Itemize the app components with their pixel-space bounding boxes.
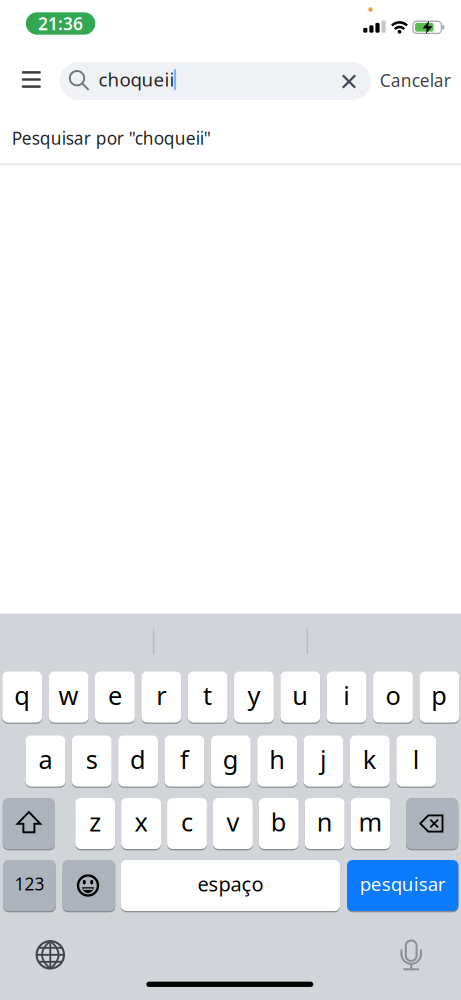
staticText: n: [317, 805, 333, 838]
staticText: u: [292, 678, 308, 712]
staticText: m: [359, 805, 383, 838]
staticText: p: [431, 678, 447, 712]
button[interactable]: Delete: [406, 797, 458, 850]
button[interactable]: Return to call: [26, 12, 95, 35]
staticText: a: [38, 742, 52, 776]
staticText: x: [135, 805, 148, 838]
button[interactable]: x: [121, 797, 161, 850]
button[interactable]: q: [2, 670, 42, 723]
button[interactable]: s: [72, 734, 112, 787]
staticText: o: [385, 678, 400, 712]
staticText: y: [247, 678, 260, 712]
button[interactable]: y: [234, 670, 274, 723]
button[interactable]: Cancelar: [360, 65, 461, 95]
staticText: g: [223, 742, 239, 776]
button[interactable]: pesquisar: [347, 859, 458, 912]
staticText: Cancelar: [380, 69, 451, 92]
staticText: f: [180, 742, 189, 776]
button[interactable]: Next keyboard: [28, 933, 72, 977]
staticText: v: [226, 805, 239, 838]
button[interactable]: l: [396, 734, 436, 787]
button[interactable]: Shift: [3, 797, 55, 850]
staticText: w: [58, 678, 78, 712]
button[interactable]: f: [165, 734, 204, 787]
button[interactable]: p: [419, 670, 459, 723]
staticText: j: [320, 742, 327, 776]
button[interactable]: w: [49, 670, 88, 723]
button[interactable]: a: [25, 734, 65, 787]
staticText: z: [89, 805, 101, 838]
staticText: 123: [14, 872, 44, 895]
button[interactable]: Menu: [15, 63, 47, 95]
button[interactable]: d: [118, 734, 158, 787]
staticText: k: [363, 742, 377, 776]
staticText: i: [343, 678, 350, 712]
staticText: l: [413, 742, 420, 776]
button[interactable]: o: [373, 670, 413, 723]
staticText: e: [108, 678, 122, 712]
staticText: h: [269, 742, 285, 776]
button[interactable]: v: [213, 797, 253, 850]
staticText: 21:36: [38, 12, 83, 35]
button[interactable]: espaço: [121, 859, 340, 912]
button[interactable]: h: [257, 734, 297, 787]
button[interactable]: b: [259, 797, 299, 850]
button[interactable]: i: [327, 670, 367, 723]
staticText: t: [203, 678, 212, 712]
button[interactable]: m: [351, 797, 390, 850]
staticText: espaço: [197, 870, 263, 897]
staticText: b: [271, 805, 287, 838]
button[interactable]: u: [280, 670, 320, 723]
button[interactable]: k: [350, 734, 390, 787]
button[interactable]: Emoji: [63, 859, 115, 912]
staticText: pesquisar: [360, 871, 446, 896]
button[interactable]: z: [75, 797, 115, 850]
staticText: q: [14, 678, 30, 712]
staticText: Pesquisar por "choqueii": [12, 126, 211, 149]
button[interactable]: r: [141, 670, 181, 723]
button[interactable]: 123: [3, 859, 56, 912]
button[interactable]: Clear text: [327, 59, 371, 103]
staticText: choqueii: [98, 67, 174, 92]
button[interactable]: c: [167, 797, 207, 850]
button[interactable]: n: [305, 797, 345, 850]
staticText: r: [156, 678, 166, 712]
button[interactable]: g: [211, 734, 251, 787]
staticText: d: [130, 742, 146, 776]
button[interactable]: j: [304, 734, 343, 787]
button[interactable]: t: [188, 670, 227, 723]
staticText: s: [86, 742, 98, 776]
staticText: c: [181, 805, 193, 838]
button[interactable]: e: [95, 670, 135, 723]
button[interactable]: Pesquisar por "choqueii": [12, 114, 452, 162]
button[interactable]: Dictation: [389, 931, 433, 975]
